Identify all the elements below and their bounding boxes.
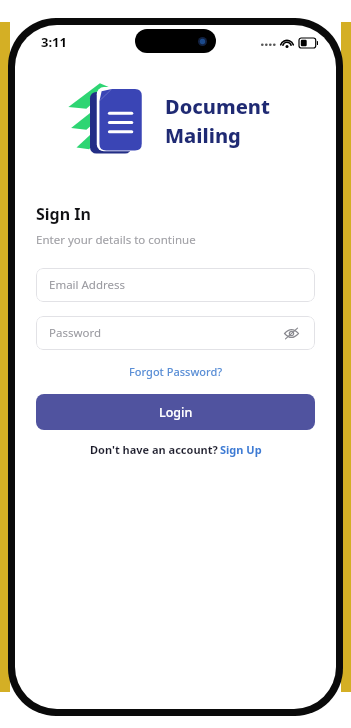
button[interactable]: Sign Up	[218, 442, 262, 457]
staticText: Password	[49, 325, 102, 341]
staticText: Sign In	[36, 203, 91, 225]
button[interactable]: Show password	[280, 322, 302, 344]
button[interactable]: Forgot Password?	[125, 362, 227, 381]
staticText: Enter your details to continue	[36, 232, 196, 248]
staticText: 3:11	[41, 33, 67, 51]
staticText: Login	[159, 404, 193, 421]
staticText: Don't have an account?	[90, 442, 218, 457]
button[interactable]: Email Address	[36, 268, 315, 302]
staticText: Forgot Password?	[129, 364, 223, 379]
staticText: Document	[165, 93, 270, 120]
button[interactable]: Password	[36, 316, 315, 350]
staticText: Sign Up	[220, 442, 262, 457]
button[interactable]: Login	[36, 394, 315, 430]
staticText: Mailing	[165, 122, 241, 149]
staticText: Email Address	[49, 277, 126, 293]
